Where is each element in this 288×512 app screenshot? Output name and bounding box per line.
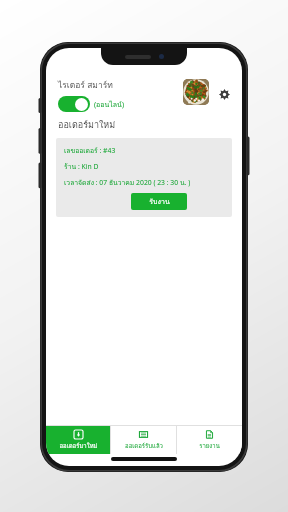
button[interactable]: Settings [216,86,232,102]
button[interactable]: Toggle online status [58,96,90,112]
button[interactable]: ออเดอร์มาใหม่ [46,426,110,454]
staticText: รับงาน [149,196,170,207]
staticText: ร้าน : Kin D [64,161,99,172]
staticText: (ออนไลน์) [94,99,124,110]
button[interactable]: Profile photo [183,79,209,105]
button[interactable]: รายงาน [177,426,242,454]
staticText: เวลาจัดส่ง : 07 ธันวาคม 2020 ( 23 : 30 น… [64,177,191,188]
staticText: ไรเดอร์ สมาร์ท [58,78,113,92]
button[interactable]: ออเดอร์รับแล้ว [111,426,176,454]
button[interactable]: เลขออเดอร์ : #43 [56,138,232,217]
button[interactable]: รับงาน [131,193,187,210]
staticText: รายงาน [199,441,220,451]
staticText: ออเดอร์มาใหม่ [59,441,98,451]
staticText: ออเดอร์รับแล้ว [125,441,163,451]
staticText: เลขออเดอร์ : #43 [64,145,116,156]
staticText: ออเดอร์มาใหม่ [58,118,116,132]
